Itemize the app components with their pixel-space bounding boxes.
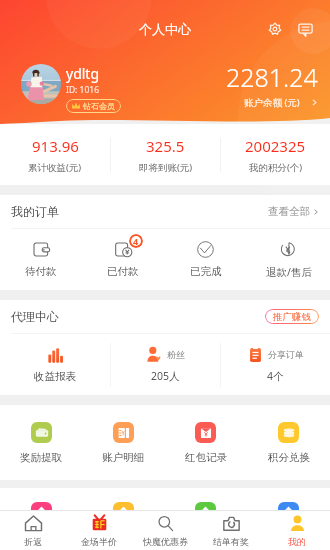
button[interactable] (0, 488, 82, 528)
staticText: 账户明细 (102, 451, 144, 464)
button[interactable]: 折返 (0, 511, 66, 550)
staticText: 退款/售后 (266, 265, 312, 279)
staticText: 收益报表 (34, 370, 76, 383)
staticText: 账户余额 (元) (244, 96, 300, 109)
button[interactable]: 奖励提取 (0, 405, 82, 480)
button[interactable]: 4 (82, 229, 164, 290)
button[interactable]: 查看全部 (268, 201, 319, 222)
staticText: 查看全部 (268, 205, 310, 218)
staticText: 代理中心 (11, 309, 59, 324)
staticText: 205人 (151, 369, 180, 383)
button[interactable]: 收益报表 (0, 334, 110, 395)
button[interactable]: 粉丝 (111, 334, 220, 395)
staticText: ID: 1016 (66, 84, 100, 96)
staticText: 个人中心 (139, 21, 191, 37)
staticText: 推广赚钱 (273, 311, 311, 323)
staticText: 折返 (24, 536, 42, 547)
button[interactable]: 2281.24 (226, 64, 318, 113)
button[interactable] (164, 488, 247, 528)
button[interactable] (247, 488, 330, 528)
button[interactable]: 325.5 (111, 124, 220, 185)
button[interactable]: Settings (264, 18, 286, 40)
staticText: 已付款 (107, 265, 139, 278)
button[interactable]: 退款/售后 (247, 229, 330, 290)
button[interactable]: 已完成 (164, 229, 247, 290)
button[interactable]: 分享订单 (221, 334, 330, 395)
staticText: 913.96 (32, 136, 79, 156)
button[interactable]: Avatar (21, 64, 61, 104)
button[interactable]: 金场半价 (66, 511, 132, 550)
staticText: 325.5 (146, 136, 185, 156)
button[interactable]: 快魔优惠券 (132, 511, 198, 550)
staticText: 待付款 (25, 265, 57, 278)
button[interactable]: 2002325 (221, 124, 330, 185)
staticText: 粉丝 (167, 349, 185, 360)
staticText: 2281.24 (226, 60, 318, 94)
staticText: 2002325 (245, 136, 306, 156)
staticText: 已完成 (190, 265, 222, 278)
staticText: 我的订单 (11, 204, 59, 219)
staticText: 结单有奖 (213, 536, 249, 547)
button[interactable]: 钻石会员 (72, 99, 115, 113)
staticText: 我的积分(个) (249, 161, 303, 174)
staticText: 我的 (288, 536, 306, 547)
button[interactable]: Messages (294, 18, 316, 40)
staticText: 钻石会员 (83, 101, 115, 111)
staticText: ydltg (66, 64, 100, 83)
button[interactable]: 913.96 (0, 124, 110, 185)
staticText: 奖励提取 (20, 451, 62, 464)
staticText: 累计收益(元) (28, 161, 82, 174)
staticText: 分享订单 (268, 349, 304, 360)
staticText: 4 (133, 235, 139, 247)
button[interactable]: 结单有奖 (198, 511, 264, 550)
button[interactable]: 推广赚钱 (273, 309, 311, 324)
button[interactable]: 红包记录 (164, 405, 247, 480)
button[interactable]: 账户明细 (82, 405, 164, 480)
button[interactable]: 我的 (264, 511, 330, 550)
staticText: 快魔优惠券 (143, 536, 188, 547)
staticText: 红包记录 (185, 451, 227, 464)
button[interactable]: 积分兑换 (247, 405, 330, 480)
staticText: 金场半价 (81, 536, 117, 547)
staticText: 积分兑换 (268, 451, 310, 464)
button[interactable] (82, 488, 164, 528)
staticText: 即将到账(元) (139, 161, 193, 174)
button[interactable]: 待付款 (0, 229, 82, 290)
staticText: 4个 (267, 369, 284, 383)
